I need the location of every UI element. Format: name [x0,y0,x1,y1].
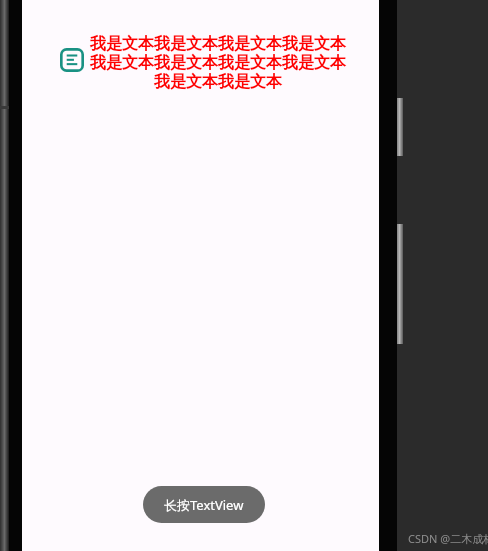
button[interactable]: Text icon [60,48,84,72]
button[interactable]: 我是文本我是文本我是文本我是文本我是文本我是文本我是文本我是文本我是文本我是文本 [90,34,346,92]
staticText: CSDN @二木成林 [408,531,488,546]
staticText: 长按TextView [164,496,244,514]
button[interactable]: 长按TextView [143,486,265,523]
